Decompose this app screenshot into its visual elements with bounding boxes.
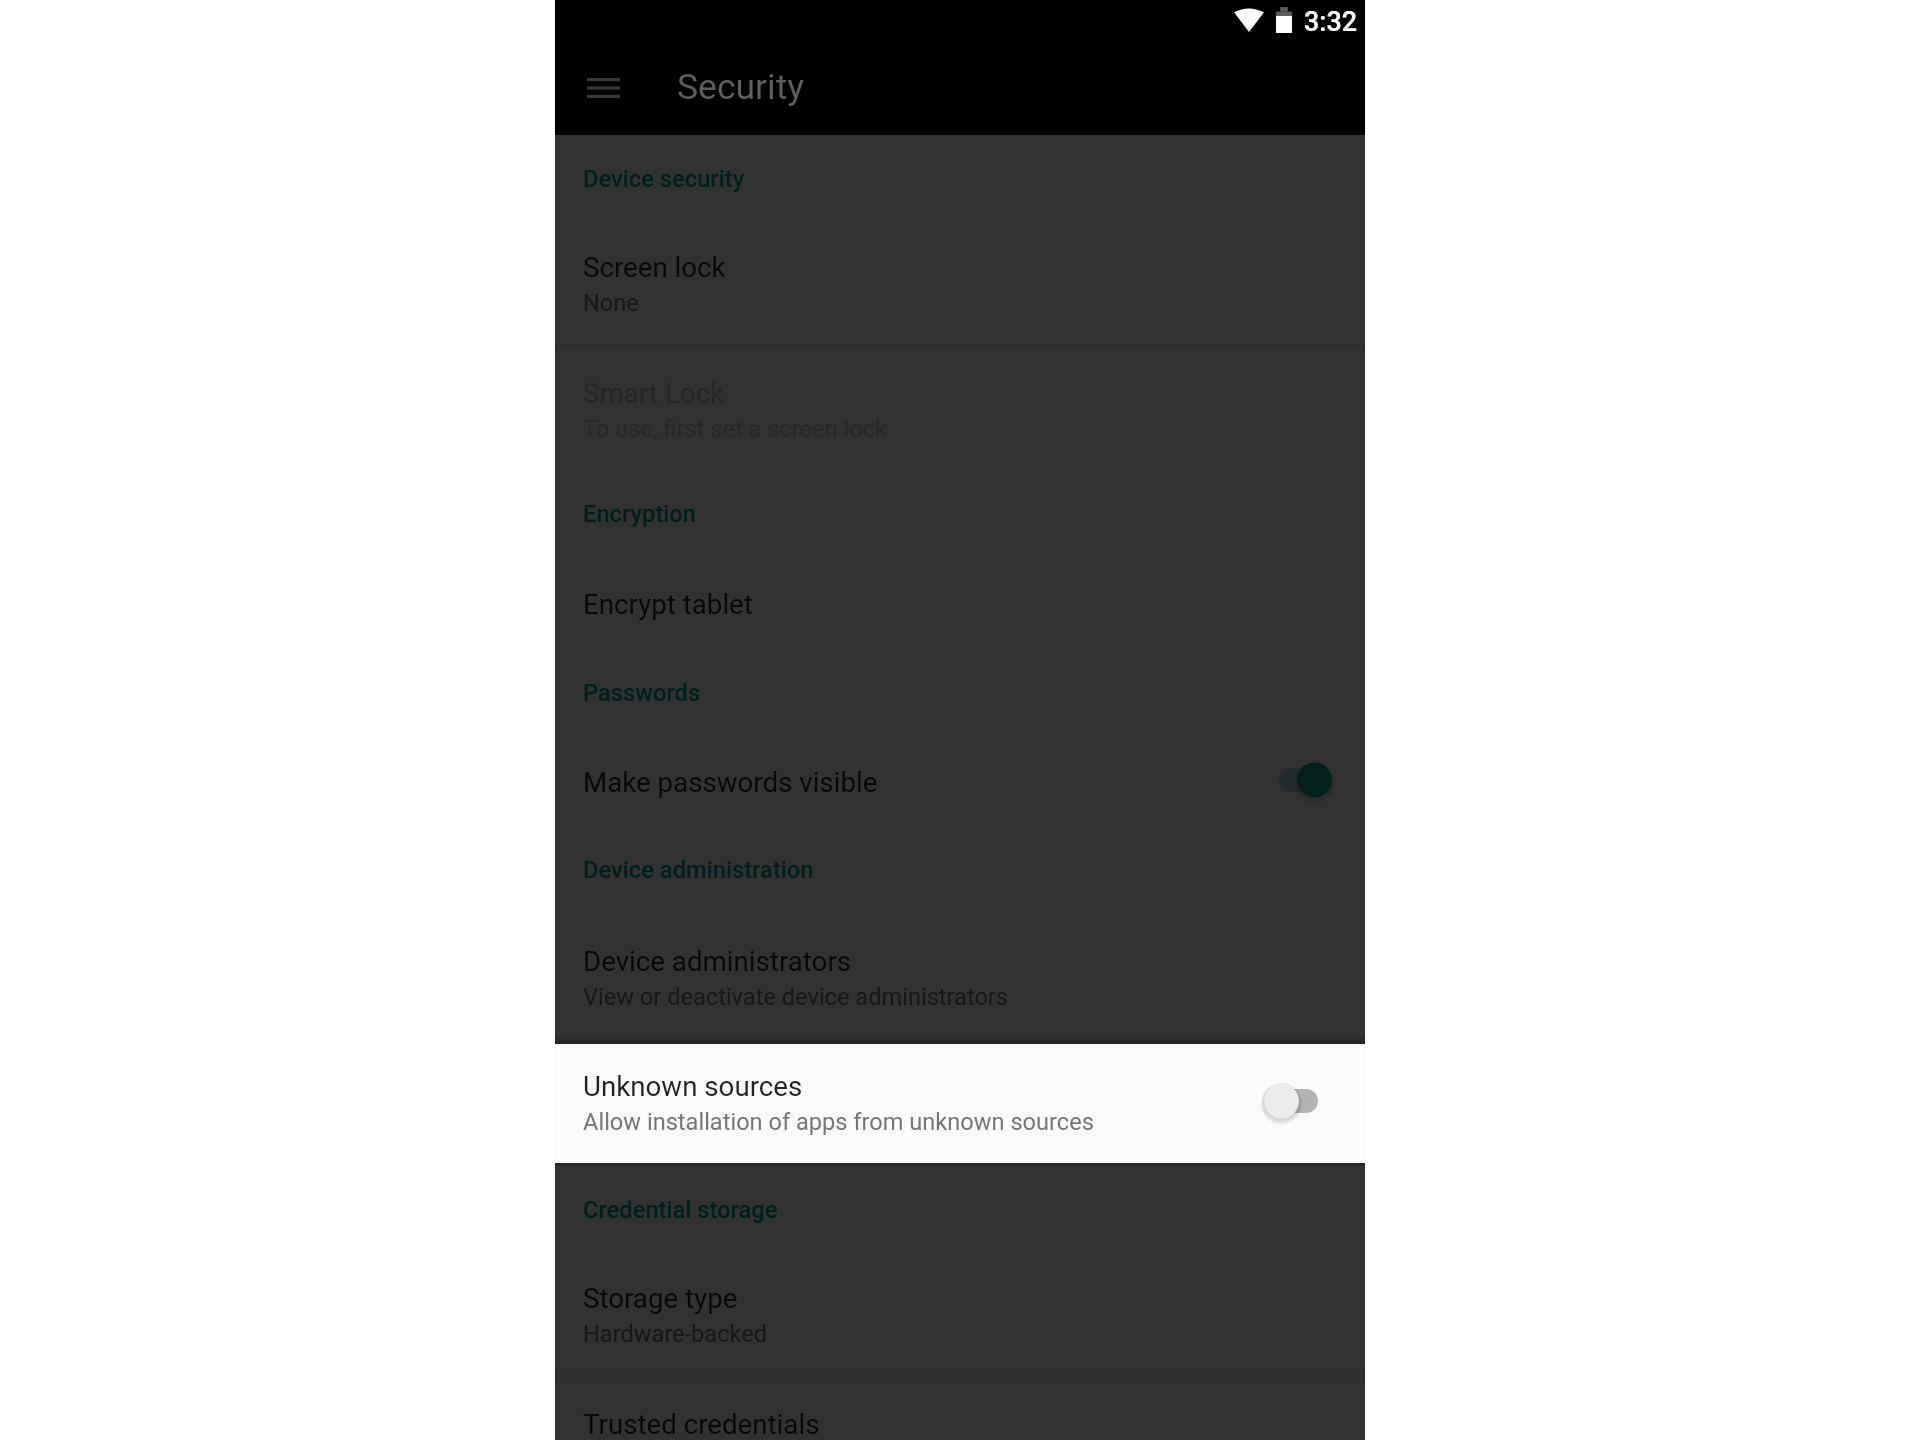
staticText: Make passwords visible	[583, 766, 878, 798]
staticText: Encrypt tablet	[583, 588, 753, 620]
button[interactable]: Encrypt tablet	[555, 560, 1365, 670]
staticText: Screen lock	[583, 251, 726, 283]
staticText: 3:32	[1304, 6, 1358, 38]
staticText: Allow installation of apps from unknown …	[583, 1108, 1094, 1136]
staticText: Trusted credentials	[583, 1408, 820, 1440]
staticText: Credential storage	[583, 1196, 778, 1224]
button[interactable]: Trusted credentials	[555, 1377, 1365, 1440]
staticText: Device security	[583, 165, 745, 193]
staticText: Storage type	[583, 1282, 738, 1314]
button[interactable]: Make passwords visible	[555, 740, 1365, 850]
staticText: Unknown sources	[583, 1070, 803, 1102]
staticText: Smart Lock	[583, 377, 724, 409]
button[interactable]: Unknown sources	[555, 1044, 1365, 1163]
button[interactable]: Device administrators	[555, 915, 1365, 1036]
staticText: Security	[677, 66, 805, 108]
staticText: To use, first set a screen lock	[583, 415, 887, 443]
staticText: None	[583, 289, 639, 317]
button[interactable]: Switch, on	[1259, 750, 1352, 810]
button[interactable]: Storage type	[555, 1255, 1365, 1375]
button[interactable]: Screen lock	[555, 220, 1365, 345]
staticText: View or deactivate device administrators	[583, 983, 1009, 1011]
button[interactable]: Switch, off	[1244, 1071, 1338, 1131]
staticText: Hardware-backed	[583, 1320, 768, 1348]
staticText: Passwords	[583, 679, 701, 707]
staticText: Device administrators	[583, 945, 852, 977]
staticText: Encryption	[583, 500, 696, 528]
button[interactable]: Open navigation drawer	[573, 58, 633, 118]
staticText: Device administration	[583, 856, 814, 884]
